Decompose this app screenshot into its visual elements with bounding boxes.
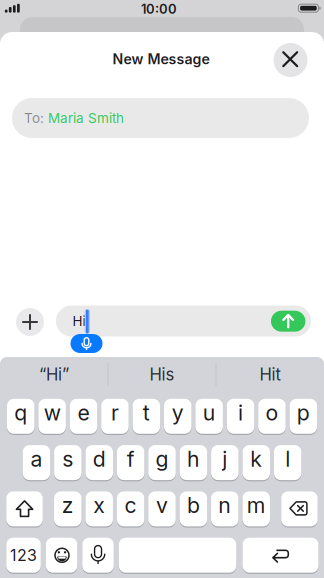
button[interactable]: w	[38, 398, 66, 434]
button[interactable]: i	[227, 398, 254, 434]
staticText: z	[62, 492, 74, 518]
staticText: p	[297, 400, 310, 426]
staticText: y	[172, 400, 184, 426]
button[interactable]: To:	[12, 98, 309, 138]
button[interactable]: f	[117, 444, 144, 481]
button[interactable]: emoji	[46, 537, 77, 573]
staticText: q	[14, 400, 27, 426]
button[interactable]: d	[85, 444, 113, 481]
button[interactable]: dictate	[82, 537, 114, 573]
button[interactable]: o	[258, 398, 286, 434]
staticText: b	[187, 492, 200, 518]
button[interactable]: return	[242, 537, 318, 573]
button[interactable]: l	[274, 444, 301, 481]
staticText: “Hi”	[39, 364, 69, 385]
staticText: c	[125, 492, 137, 518]
staticText: s	[62, 446, 73, 472]
staticText: i	[238, 400, 243, 426]
button[interactable]: j	[211, 444, 239, 481]
button[interactable]: His	[110, 357, 214, 391]
staticText: His	[149, 364, 174, 385]
button[interactable]: Dictation	[70, 334, 102, 353]
button[interactable]: n	[211, 491, 239, 527]
staticText: 123	[10, 545, 37, 565]
button[interactable]: r	[101, 398, 129, 434]
button[interactable]: u	[195, 398, 223, 434]
staticText: Hit	[259, 364, 280, 385]
button[interactable]: p	[290, 398, 317, 434]
staticText: h	[187, 446, 200, 472]
staticText: m	[247, 492, 266, 518]
staticText: w	[44, 400, 61, 426]
staticText: Hi	[72, 313, 85, 329]
staticText: Maria Smith	[48, 110, 124, 126]
staticText: New Message	[112, 50, 209, 67]
button[interactable]: q	[7, 398, 34, 434]
button[interactable]: Close	[273, 43, 307, 77]
button[interactable]: y	[164, 398, 191, 434]
staticText: o	[265, 400, 278, 426]
button[interactable]: Hit	[218, 357, 322, 391]
button[interactable]: shift	[6, 491, 43, 527]
button[interactable]: More options	[16, 308, 44, 336]
button[interactable]: b	[180, 491, 207, 527]
button[interactable]: k	[242, 444, 270, 481]
button[interactable]: x	[85, 491, 113, 527]
staticText: l	[285, 446, 290, 472]
staticText: e	[77, 400, 89, 426]
staticText: a	[30, 446, 42, 472]
button[interactable]: h	[180, 444, 207, 481]
staticText: n	[218, 492, 231, 518]
button[interactable]: t	[133, 398, 160, 434]
button[interactable]: space	[119, 537, 236, 573]
staticText: k	[250, 446, 262, 472]
staticText: r	[111, 400, 119, 426]
staticText: g	[156, 446, 169, 472]
staticText: u	[203, 400, 216, 426]
button[interactable]: Send	[271, 311, 305, 332]
staticText: v	[156, 492, 168, 518]
button[interactable]: e	[70, 398, 97, 434]
staticText: t	[143, 400, 150, 426]
button[interactable]: s	[54, 444, 82, 481]
button[interactable]: g	[148, 444, 176, 481]
staticText: x	[93, 492, 105, 518]
staticText: 10:00	[141, 1, 177, 17]
button[interactable]: v	[148, 491, 176, 527]
button[interactable]: 123	[6, 537, 41, 573]
button[interactable]: z	[54, 491, 81, 527]
staticText: To:	[24, 110, 44, 126]
button[interactable]: c	[117, 491, 144, 527]
button[interactable]: delete	[281, 491, 318, 527]
button[interactable]: m	[242, 491, 270, 527]
staticText: d	[93, 446, 106, 472]
staticText: j	[222, 446, 227, 472]
button[interactable]: “Hi”	[2, 357, 106, 391]
button[interactable]: a	[23, 444, 50, 481]
staticText: f	[127, 446, 135, 472]
